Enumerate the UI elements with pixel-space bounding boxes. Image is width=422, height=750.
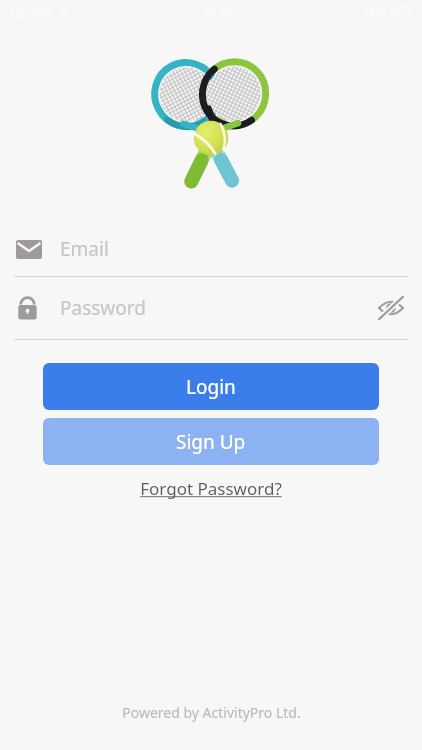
button[interactable]: Sign Up (43, 418, 379, 465)
staticText: Password (60, 295, 146, 321)
button[interactable]: Email (0, 222, 422, 276)
staticText: Powered by ActivityPro Ltd. (122, 703, 301, 722)
staticText: Sign Up (176, 429, 246, 455)
button[interactable]: Forgot Password? (134, 475, 288, 502)
staticText: Login (186, 374, 236, 400)
button[interactable]: Password (0, 277, 422, 339)
button[interactable]: Show password (374, 291, 408, 325)
button[interactable]: Login (43, 363, 379, 410)
staticText: Email (60, 236, 109, 262)
staticText: Forgot Password? (140, 477, 282, 500)
